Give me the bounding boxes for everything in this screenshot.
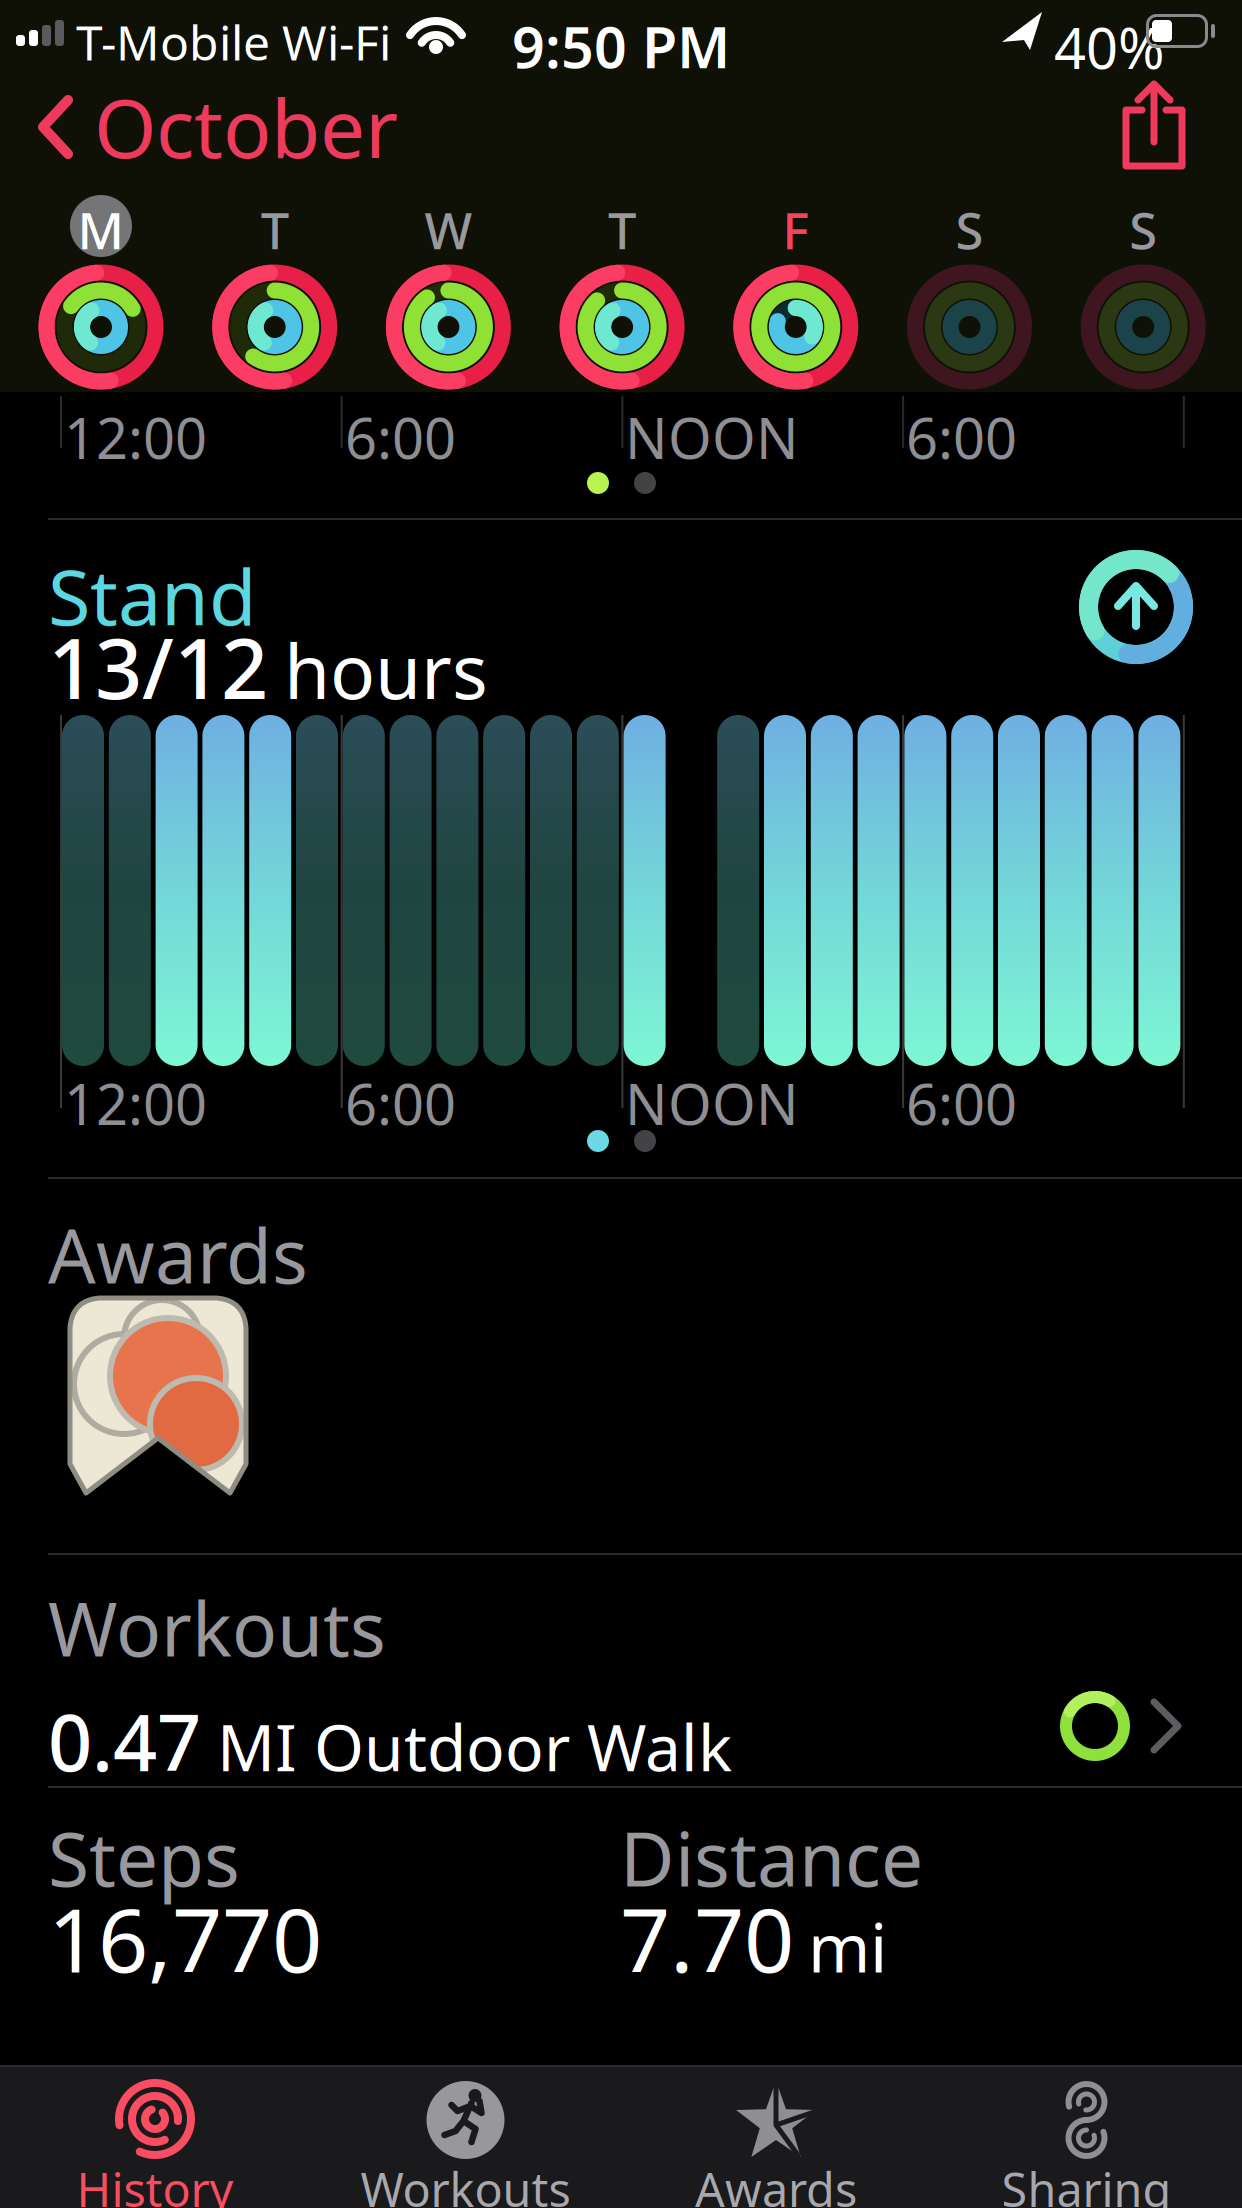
staticText: 0.47: [48, 1690, 201, 1793]
staticText: T: [608, 196, 636, 263]
button[interactable]: Sharing: [931, 2065, 1241, 2208]
staticText: 16,770: [48, 1880, 322, 1997]
button[interactable]: History: [0, 2065, 310, 2208]
staticText: 12:00: [64, 400, 207, 474]
staticText: Stand: [48, 544, 257, 647]
staticText: October: [94, 74, 398, 180]
button[interactable]: October Challenge award: [62, 1290, 254, 1500]
staticText: NOON: [625, 400, 799, 474]
staticText: 12:00: [64, 1066, 207, 1140]
button[interactable]: F: [709, 172, 883, 398]
staticText: S: [1129, 196, 1157, 263]
staticText: mi: [808, 1902, 887, 1991]
staticText: Sharing: [1001, 2158, 1171, 2208]
button[interactable]: T: [535, 172, 709, 398]
staticText: T: [261, 196, 289, 263]
staticText: Steps: [48, 1808, 240, 1907]
staticText: S: [955, 196, 983, 263]
staticText: 6:00: [906, 1066, 1017, 1140]
button[interactable]: Workouts: [310, 2065, 620, 2208]
button[interactable]: Share: [1124, 82, 1184, 168]
staticText: 6:00: [345, 1066, 456, 1140]
button[interactable]: T: [188, 172, 362, 398]
staticText: 6:00: [345, 400, 456, 474]
staticText: W: [424, 196, 472, 263]
staticText: Awards: [48, 1205, 308, 1304]
staticText: 6:00: [906, 400, 1017, 474]
staticText: 13/12: [48, 612, 268, 722]
button[interactable]: S: [1056, 172, 1230, 398]
button[interactable]: S: [882, 172, 1056, 398]
staticText: History: [76, 2158, 233, 2208]
staticText: Awards: [695, 2158, 857, 2208]
staticText: 9:50 PM: [512, 8, 730, 84]
button[interactable]: M: [14, 172, 188, 398]
staticText: Workouts: [360, 2158, 570, 2208]
button[interactable]: Back: [38, 92, 398, 162]
staticText: F: [782, 196, 809, 263]
staticText: T-Mobile Wi-Fi: [76, 10, 391, 74]
button[interactable]: 0.47: [0, 1666, 1242, 1786]
staticText: hours: [284, 620, 488, 720]
button[interactable]: W: [361, 172, 535, 398]
staticText: NOON: [625, 1066, 799, 1140]
staticText: Workouts: [48, 1578, 386, 1677]
staticText: MI Outdoor Walk: [217, 1704, 732, 1789]
staticText: Distance: [620, 1808, 923, 1907]
staticText: 7.70: [620, 1880, 794, 1997]
staticText: 40%: [1054, 10, 1165, 84]
staticText: M: [77, 196, 124, 263]
button[interactable]: Awards: [621, 2065, 931, 2208]
